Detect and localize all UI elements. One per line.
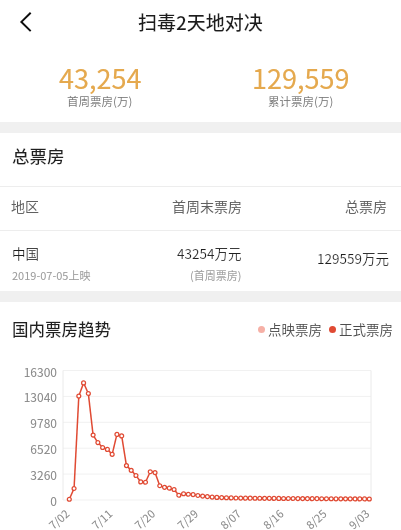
staticText: (首周票房) (190, 267, 242, 283)
button[interactable]: 43,254 (0, 43, 200, 122)
staticText: 3260 (30, 466, 57, 483)
staticText: 正式票房 (339, 319, 393, 339)
staticText: 129559万元 (317, 248, 389, 268)
staticText: 9780 (30, 414, 57, 431)
staticText: 首周票房(万) (67, 93, 133, 110)
staticText: 129,559 (252, 58, 350, 97)
staticText: 2019-07-05上映 (12, 267, 91, 283)
staticText: 13040 (23, 388, 57, 405)
staticText: 总票房 (12, 143, 65, 168)
staticText: 扫毒2天地对决 (138, 8, 263, 36)
button[interactable]: Back (4, 1, 46, 43)
staticText: 国内票房趋势 (12, 317, 111, 341)
staticText: 地区 (11, 196, 39, 216)
staticText: 累计票房(万) (268, 93, 334, 110)
staticText: 总票房 (345, 196, 387, 216)
staticText: 首周末票房 (172, 196, 242, 216)
staticText: 点映票房 (268, 319, 322, 339)
staticText: 0 (50, 492, 57, 509)
staticText: 43254万元 (177, 243, 242, 263)
button[interactable]: 中国 (0, 231, 401, 291)
button[interactable]: 129,559 (200, 43, 401, 122)
staticText: 43,254 (59, 58, 142, 97)
staticText: 6520 (30, 440, 57, 457)
staticText: 16300 (23, 363, 57, 380)
staticText: 中国 (12, 243, 39, 263)
